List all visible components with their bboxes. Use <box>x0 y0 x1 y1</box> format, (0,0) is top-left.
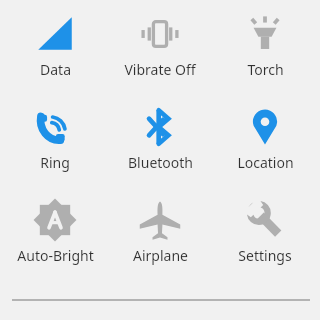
button[interactable]: Data <box>5 8 105 79</box>
staticText: Location <box>237 153 294 172</box>
staticText: Ring <box>40 153 70 172</box>
button[interactable]: Torch <box>215 8 315 79</box>
staticText: Vibrate Off <box>124 60 196 79</box>
staticText: Auto-Bright <box>17 246 94 265</box>
button[interactable]: Location <box>215 101 315 172</box>
staticText: Data <box>40 60 71 79</box>
staticText: Settings <box>238 246 292 265</box>
button[interactable]: Settings <box>215 194 315 265</box>
staticText: Airplane <box>133 246 188 265</box>
button[interactable]: Auto-Bright <box>5 194 105 265</box>
button[interactable]: Bluetooth <box>110 101 210 172</box>
staticText: Torch <box>247 60 284 79</box>
button[interactable]: Ring <box>5 101 105 172</box>
button[interactable]: Vibrate Off <box>110 8 210 79</box>
button[interactable]: Airplane <box>110 194 210 265</box>
staticText: Bluetooth <box>128 153 193 172</box>
